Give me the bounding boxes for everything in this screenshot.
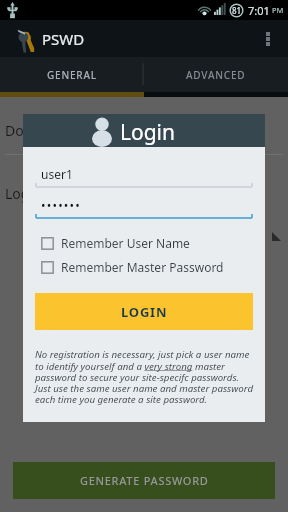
staticText: 7:01	[248, 3, 270, 18]
staticText: No registration is necessary, just pick …	[35, 348, 253, 406]
button[interactable]: GENERATE PASSWORD	[13, 462, 275, 499]
staticText: Login	[5, 184, 42, 203]
staticText: Remember User Name	[61, 235, 190, 251]
button[interactable]: GENERAL	[0, 57, 143, 92]
staticText: Login	[120, 118, 176, 147]
button[interactable]: Remember Master Password	[35, 259, 253, 275]
button[interactable]: user1	[35, 166, 253, 188]
button[interactable]: ADVANCED	[144, 57, 288, 92]
staticText: user1	[41, 166, 73, 182]
staticText: GENERATE PASSWORD	[80, 473, 209, 488]
button[interactable]: LOGIN	[35, 293, 253, 330]
staticText: Remember Master Password	[61, 259, 224, 275]
staticText: Domain	[5, 121, 57, 140]
button[interactable]: •••••••	[35, 197, 253, 219]
staticText: GENERAL	[47, 68, 97, 82]
button[interactable]: Remember User Name	[35, 235, 253, 251]
staticText: ADVANCED	[186, 68, 246, 82]
staticText: 81	[232, 5, 242, 16]
staticText: •••••••	[41, 197, 81, 213]
staticText: LOGIN	[121, 303, 168, 321]
staticText: PSWD	[42, 29, 85, 49]
staticText: PM	[272, 5, 284, 15]
button[interactable]: More options	[253, 20, 283, 57]
